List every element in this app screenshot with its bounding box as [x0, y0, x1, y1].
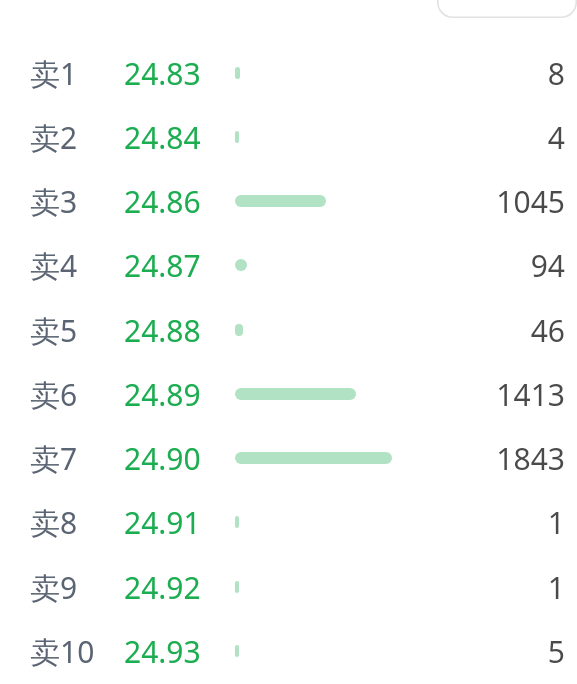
button[interactable]: 卖8 — [0, 490, 577, 554]
staticText: 94 — [365, 245, 565, 286]
staticText: 卖3 — [30, 181, 78, 222]
button[interactable]: 卖1 — [0, 41, 577, 105]
staticText: 卖10 — [30, 631, 95, 672]
staticText: 24.84 — [124, 117, 201, 158]
staticText: 卖4 — [30, 245, 78, 286]
staticText: 卖5 — [30, 310, 78, 351]
button[interactable]: 卖10 — [0, 619, 577, 683]
staticText: 卖8 — [30, 502, 78, 543]
staticText: 24.83 — [124, 53, 201, 94]
staticText: 24.90 — [124, 438, 201, 479]
button[interactable]: 卖7 — [0, 426, 577, 490]
button[interactable]: 卖5 — [0, 298, 577, 362]
staticText: 1 — [365, 567, 565, 608]
staticText: 卖2 — [30, 117, 78, 158]
staticText: 5 — [365, 631, 565, 672]
button[interactable]: 卖3 — [0, 169, 577, 233]
staticText: 1045 — [365, 181, 565, 222]
button[interactable]: 涨停 标签 — [437, 0, 577, 18]
button[interactable]: 卖2 — [0, 105, 577, 169]
staticText: 24.93 — [124, 631, 201, 672]
button[interactable]: 卖9 — [0, 555, 577, 619]
staticText: 24.86 — [124, 181, 201, 222]
staticText: 1 — [365, 502, 565, 543]
staticText: 卖1 — [30, 53, 78, 94]
staticText: 24.91 — [124, 502, 201, 543]
staticText: 24.87 — [124, 245, 201, 286]
staticText: 24.92 — [124, 567, 201, 608]
button[interactable]: 卖6 — [0, 362, 577, 426]
staticText: 8 — [365, 53, 565, 94]
staticText: 卖9 — [30, 567, 78, 608]
staticText: 24.88 — [124, 310, 201, 351]
staticText: 卖7 — [30, 438, 78, 479]
staticText: 24.89 — [124, 374, 201, 415]
staticText: 1413 — [365, 374, 565, 415]
button[interactable]: 卖4 — [0, 233, 577, 297]
staticText: 卖6 — [30, 374, 78, 415]
staticText: 4 — [365, 117, 565, 158]
staticText: 1843 — [365, 438, 565, 479]
staticText: 46 — [365, 310, 565, 351]
